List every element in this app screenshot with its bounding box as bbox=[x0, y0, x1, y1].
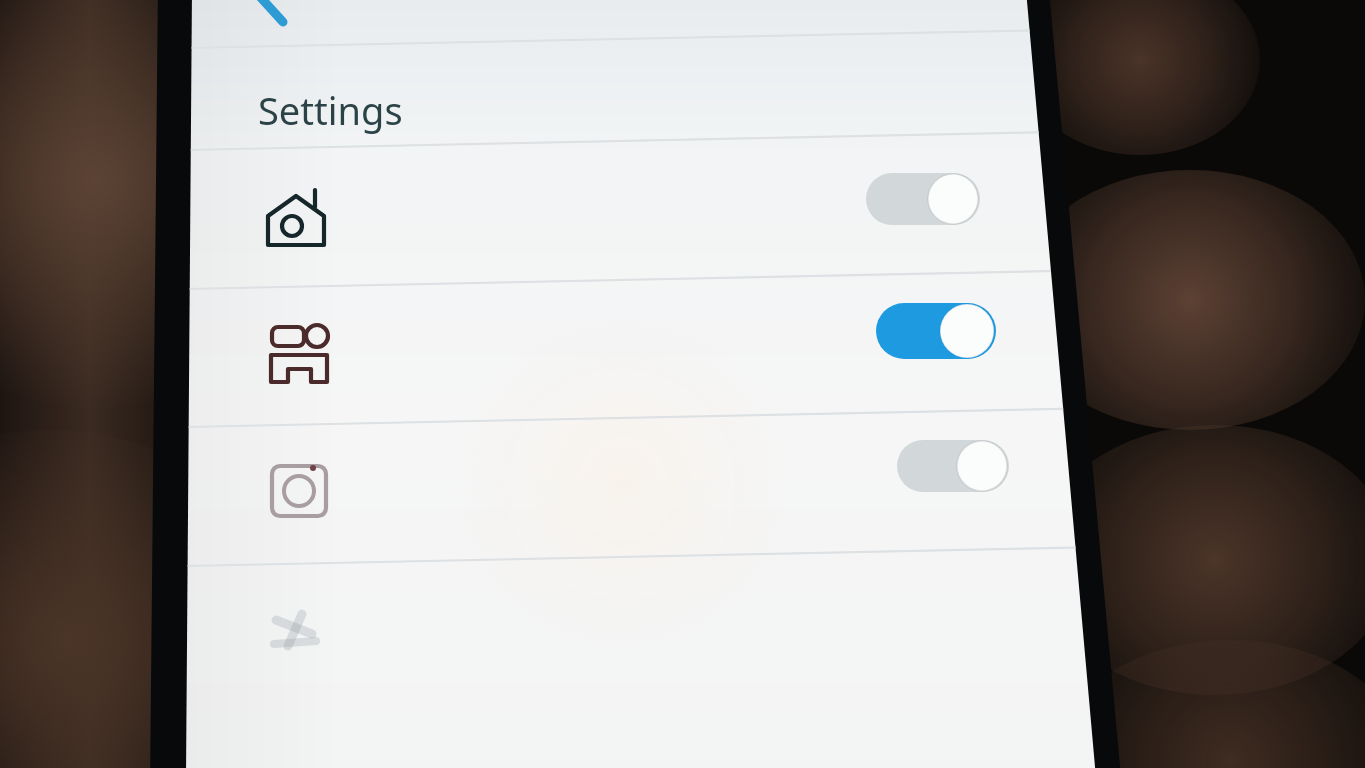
button[interactable]: Dashboard toggle, on bbox=[186, 289, 1036, 427]
button[interactable]: Home monitoring toggle, off bbox=[186, 150, 1026, 289]
button[interactable]: Settings row bbox=[186, 566, 1056, 706]
button[interactable]: Back bbox=[240, 0, 300, 34]
button[interactable]: Camera toggle, off bbox=[186, 427, 1046, 566]
